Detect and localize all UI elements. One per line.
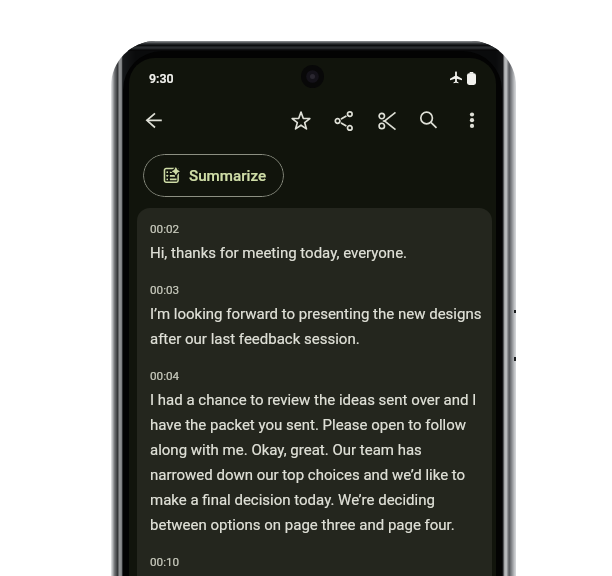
button[interactable]: Summarize: [143, 154, 284, 197]
button[interactable]: Trim: [367, 99, 409, 143]
staticText: 00:03: [150, 283, 180, 297]
button[interactable]: 00:10: [150, 555, 485, 569]
staticText: 00:04: [150, 369, 180, 383]
button[interactable]: Back: [131, 98, 175, 142]
staticText: I had a chance to review the ideas sent …: [150, 385, 485, 535]
staticText: 9:30: [149, 71, 174, 86]
button[interactable]: Search: [407, 99, 449, 143]
button[interactable]: Share: [323, 99, 365, 143]
staticText: Summarize: [189, 167, 267, 185]
button[interactable]: Favourite: [280, 99, 322, 143]
staticText: I’m looking forward to presenting the ne…: [150, 299, 485, 349]
button[interactable]: More options: [451, 99, 493, 143]
button[interactable]: 00:03: [150, 283, 485, 369]
staticText: 00:02: [150, 222, 180, 236]
button[interactable]: 00:04: [150, 369, 485, 555]
staticText: Hi, thanks for meeting today, everyone.: [150, 238, 408, 263]
button[interactable]: 00:02: [150, 222, 485, 283]
staticText: 00:10: [150, 555, 180, 569]
